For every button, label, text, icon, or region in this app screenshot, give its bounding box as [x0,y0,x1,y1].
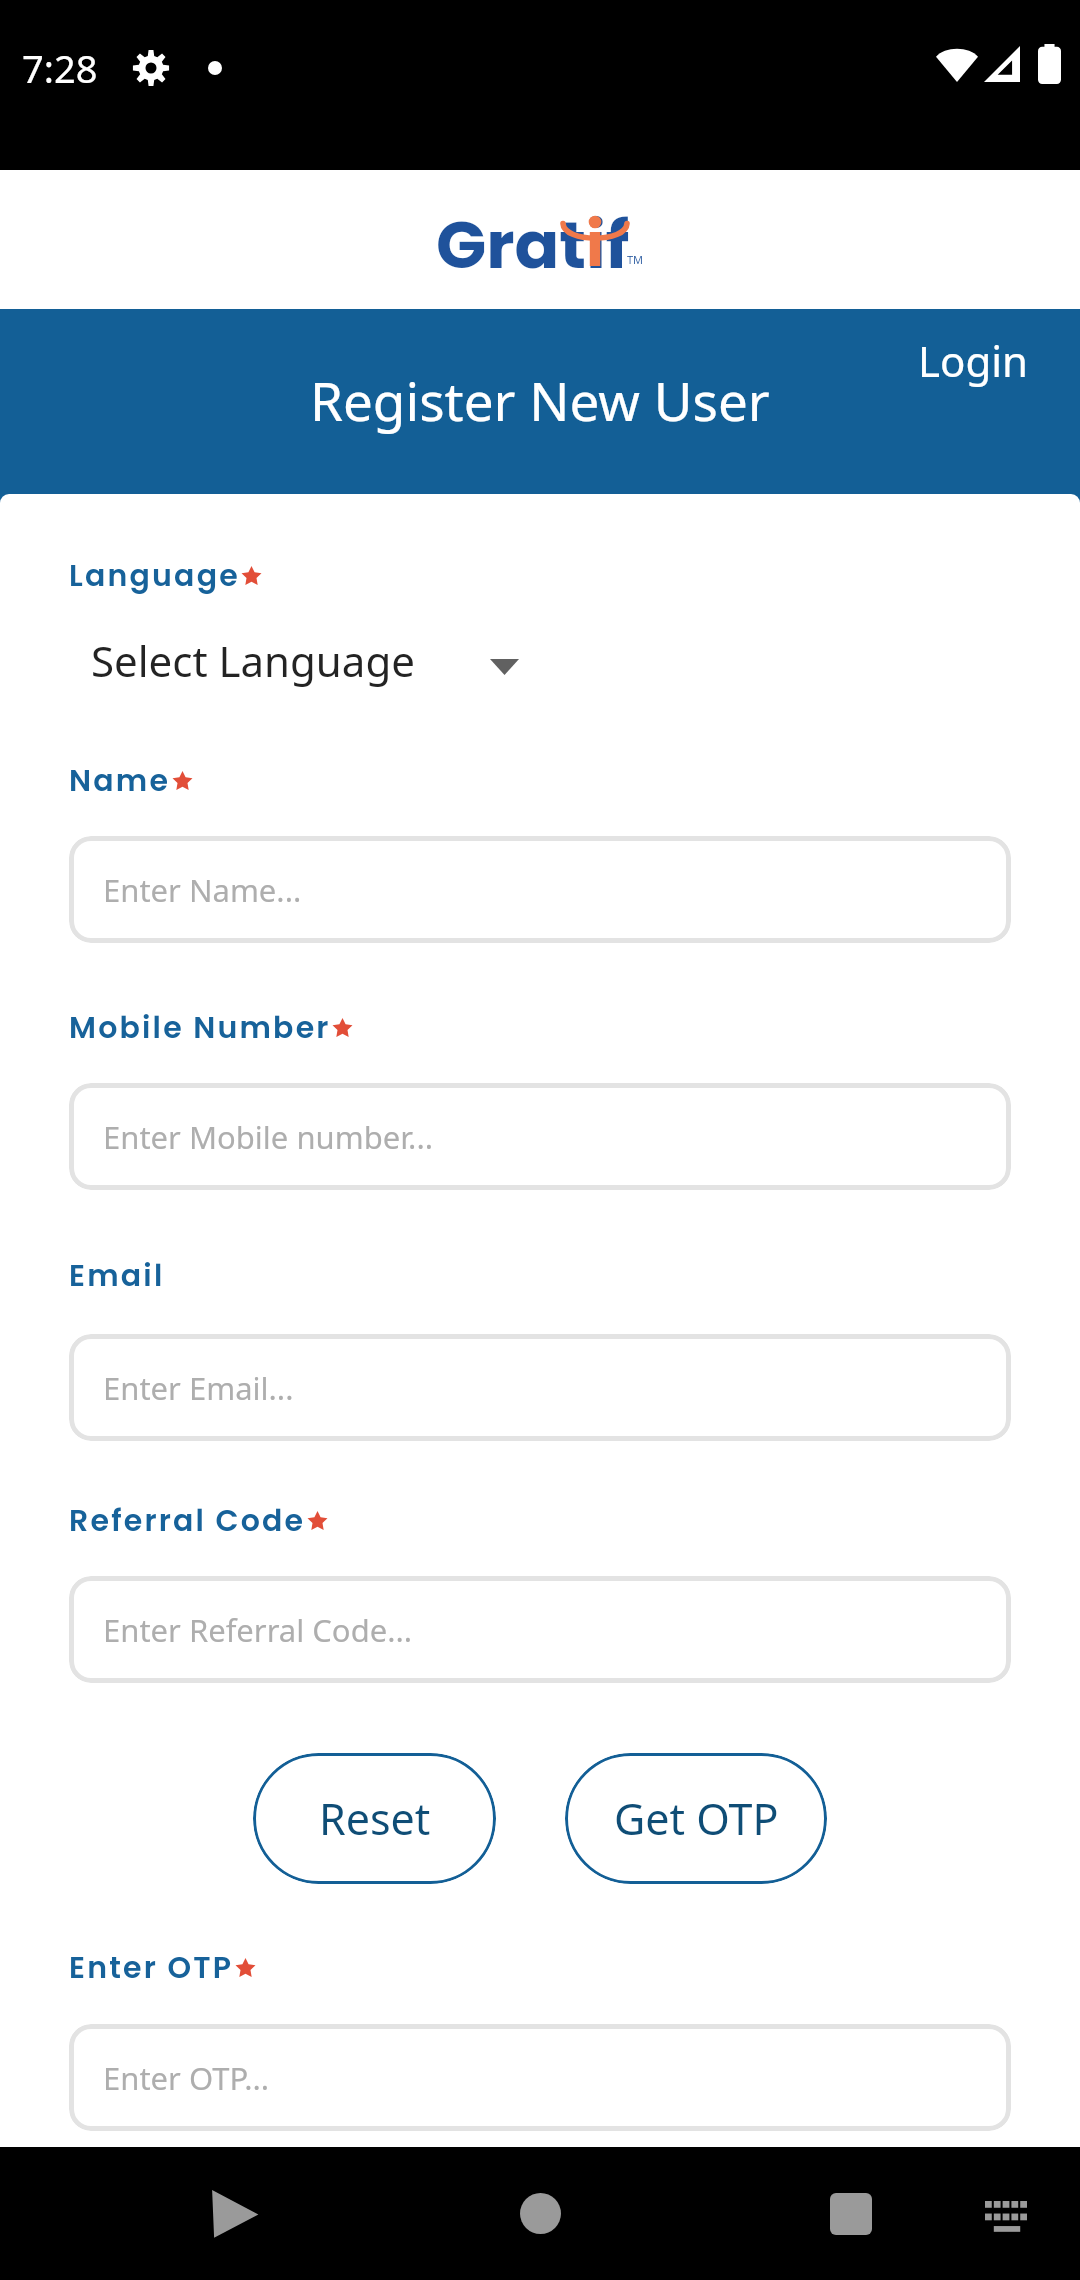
button[interactable]: Select Language [69,632,415,689]
staticText: Register New User [310,364,770,436]
staticText: Get OTP [614,1789,779,1848]
button[interactable]: Login [918,309,1080,389]
staticText: 7:28 [22,42,98,94]
staticText: Language [69,555,240,597]
button[interactable]: Reset [253,1753,496,1884]
staticText: Enter Name... [103,869,302,911]
button[interactable]: Enter Referral Code... [69,1576,1011,1683]
staticText: Gratifi [436,199,648,271]
staticText: Referral Code [69,1500,306,1542]
button[interactable]: Back [173,2147,293,2280]
staticText: Email [69,1255,165,1297]
staticText: Login [918,332,1029,389]
staticText: Reset [319,1789,431,1848]
button[interactable]: Recent apps [791,2147,911,2280]
staticText: Select Language [91,632,415,689]
staticText: TM [627,252,644,267]
staticText: Enter OTP [69,1947,234,1989]
staticText: Enter Referral Code... [103,1609,413,1651]
staticText: Enter OTP... [103,2057,270,2099]
staticText: Name [69,760,171,802]
staticText: Enter Mobile number... [103,1116,434,1158]
button[interactable]: Keyboard [956,2147,1056,2280]
button[interactable]: Enter OTP... [69,2024,1011,2131]
button[interactable]: Enter Email... [69,1334,1011,1441]
staticText: Enter Email... [103,1367,294,1409]
button[interactable]: Get OTP [565,1753,827,1884]
button[interactable]: Enter Mobile number... [69,1083,1011,1190]
button[interactable]: Enter Name... [69,836,1011,943]
staticText: Mobile Number [69,1007,331,1049]
button[interactable]: Home [480,2147,600,2280]
